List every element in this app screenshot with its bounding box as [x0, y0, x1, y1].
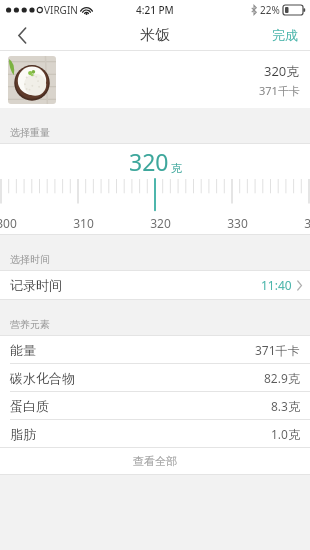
staticText: 营养元素: [10, 318, 50, 331]
button[interactable]: 320克: [0, 51, 310, 108]
staticText: 371千卡: [259, 83, 300, 98]
staticText: 1.0克: [271, 426, 300, 442]
staticText: 选择重量: [10, 126, 50, 139]
staticText: 371千卡: [255, 342, 300, 358]
button[interactable]: Weight scale: [0, 178, 310, 212]
staticText: 选择时间: [10, 253, 50, 266]
button[interactable]: 蛋白质: [0, 392, 310, 419]
staticText: 300: [0, 215, 17, 231]
staticText: 8.3克: [271, 398, 300, 414]
staticText: 320: [129, 146, 169, 177]
button[interactable]: 脂肪: [0, 420, 310, 447]
staticText: 查看全部: [133, 454, 177, 468]
staticText: 脂肪: [10, 426, 36, 442]
staticText: 完成: [272, 27, 298, 43]
staticText: 蛋白质: [10, 398, 49, 414]
staticText: 碳水化合物: [10, 370, 75, 386]
staticText: 能量: [10, 342, 36, 358]
staticText: 记录时间: [10, 277, 62, 293]
button[interactable]: 完成: [260, 20, 310, 50]
button[interactable]: 碳水化合物: [0, 364, 310, 391]
staticText: 320克: [264, 62, 300, 80]
button[interactable]: Back: [0, 20, 44, 50]
staticText: VIRGIN: [44, 3, 78, 17]
staticText: 340: [304, 215, 310, 231]
staticText: 82.9克: [264, 370, 300, 386]
staticText: 330: [227, 215, 248, 231]
staticText: 4:21 PM: [136, 3, 174, 17]
staticText: 11:40: [261, 277, 292, 293]
staticText: 320: [150, 215, 171, 231]
button[interactable]: 能量: [0, 336, 310, 363]
button[interactable]: 记录时间: [0, 271, 310, 299]
staticText: 米饭: [140, 26, 170, 45]
staticText: 22%: [260, 3, 280, 17]
button[interactable]: 查看全部: [0, 448, 310, 474]
staticText: 310: [73, 215, 94, 231]
staticText: 克: [171, 161, 182, 175]
